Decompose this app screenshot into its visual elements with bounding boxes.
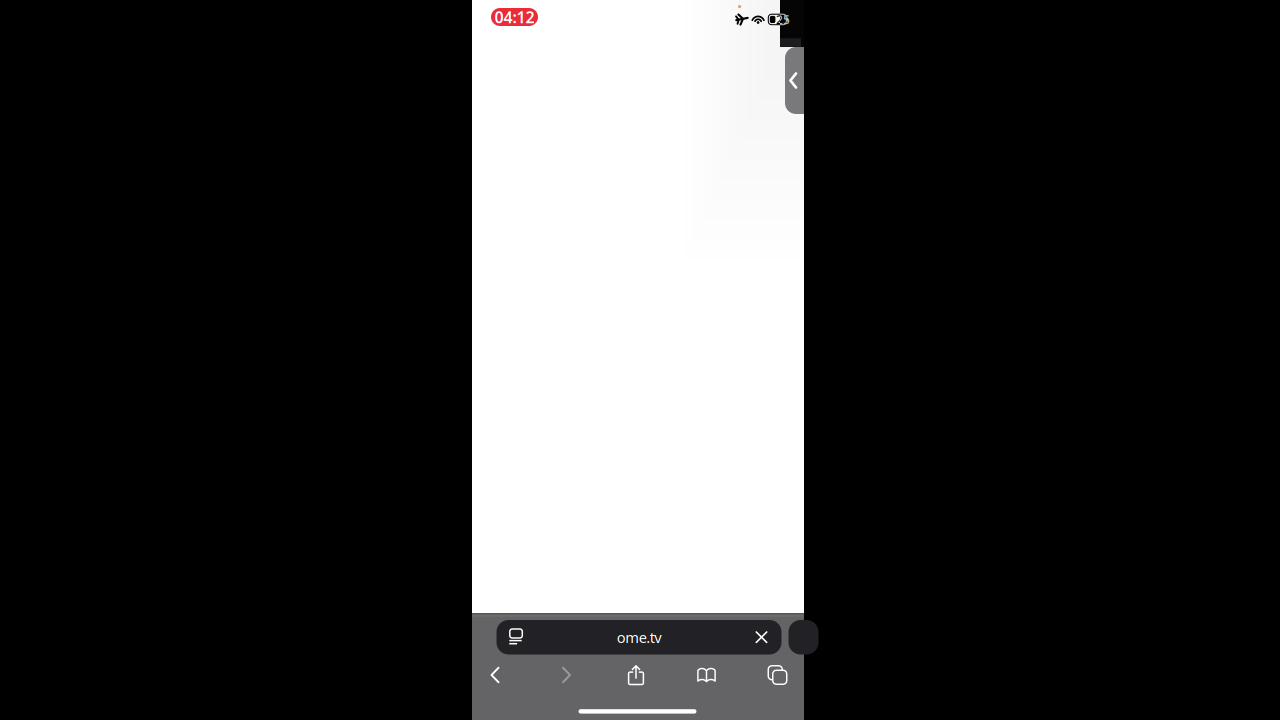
button[interactable]: Back to previous app (785, 47, 804, 114)
button[interactable]: Bookmarks (684, 658, 728, 692)
button[interactable]: Back (473, 658, 517, 692)
staticText: 04:12 (494, 6, 534, 28)
button[interactable]: Recording — return to call (491, 8, 538, 26)
button[interactable]: Share (614, 658, 658, 692)
button[interactable]: Forward (544, 658, 588, 692)
staticText: 25 (776, 12, 790, 28)
button[interactable]: Next tab (788, 620, 818, 654)
button[interactable]: ome.tv (496, 620, 781, 654)
staticText: 25 (776, 12, 790, 28)
button[interactable]: Tabs (755, 658, 799, 692)
staticText: ome.tv (617, 627, 661, 647)
